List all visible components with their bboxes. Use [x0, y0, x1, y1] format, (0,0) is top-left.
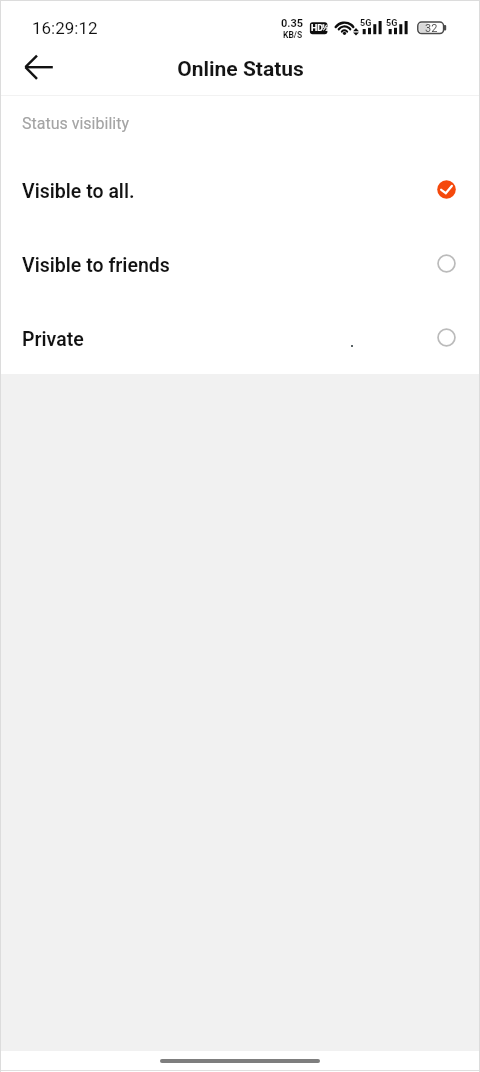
staticText: 32	[425, 22, 438, 35]
staticText: 16:29:12	[32, 18, 98, 38]
staticText: Visible to all.	[22, 180, 135, 203]
staticText: Online Status	[177, 57, 304, 82]
button[interactable]: Private	[0, 300, 480, 374]
staticText: Private	[22, 328, 84, 351]
button[interactable]: Visible to all.	[0, 152, 480, 226]
staticText: Visible to friends	[22, 254, 170, 277]
staticText: 5G	[386, 18, 398, 29]
staticText: Status visibility	[22, 114, 129, 133]
staticText: ½	[322, 23, 329, 34]
staticText: 0.35	[281, 17, 304, 30]
staticText: HD	[311, 23, 324, 34]
staticText: 5G	[360, 18, 372, 29]
button[interactable]: Back	[4, 45, 50, 91]
button[interactable]: Visible to friends	[0, 226, 480, 300]
staticText: KB/S	[283, 30, 303, 40]
